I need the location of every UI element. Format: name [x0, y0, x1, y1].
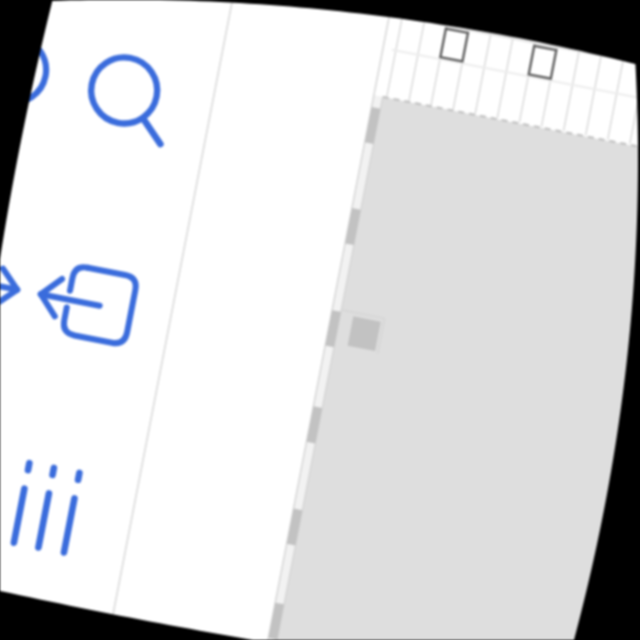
button[interactable]: Zoom [0, 23, 67, 119]
button[interactable]: Log out [38, 255, 134, 351]
button[interactable]: Levels [0, 459, 94, 555]
button[interactable]: Log in [0, 234, 26, 330]
button[interactable]: Search [76, 42, 172, 138]
